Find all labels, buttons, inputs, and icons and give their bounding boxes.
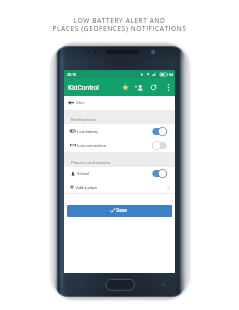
- button[interactable]: Add a place: [64, 180, 175, 194]
- button[interactable]: Favourite: [119, 79, 132, 96]
- staticText: KidControl: [68, 84, 99, 92]
- staticText: Lost connection: [77, 143, 106, 148]
- staticText: Notifications: [71, 117, 97, 122]
- button[interactable]: More options: [162, 79, 175, 96]
- button[interactable]: Low battery switch: [152, 127, 167, 136]
- button[interactable]: Low battery: [64, 124, 175, 139]
- staticText: 64: [169, 73, 174, 77]
- button[interactable]: Lost connection switch: [152, 141, 167, 150]
- staticText: PLACES (GEOFENCES) NOTIFICATIONS: [0, 24, 239, 33]
- button[interactable]: Lost connection: [64, 138, 175, 153]
- staticText: School: [77, 171, 90, 176]
- staticText: Alex: [76, 100, 85, 105]
- staticText: 20:10: [67, 73, 77, 77]
- staticText: Places notifications: [71, 160, 111, 165]
- staticText: LOW BATTERY ALERT AND: [0, 16, 239, 25]
- button[interactable]: School switch: [152, 169, 167, 178]
- button[interactable]: Refresh: [147, 79, 160, 96]
- button[interactable]: Save: [67, 205, 172, 217]
- button[interactable]: Add child: [132, 79, 145, 96]
- button[interactable]: Alex: [64, 96, 175, 111]
- button[interactable]: School: [64, 167, 175, 180]
- staticText: Save: [116, 207, 128, 213]
- staticText: Add a place: [76, 185, 98, 190]
- staticText: Low battery: [77, 129, 99, 134]
